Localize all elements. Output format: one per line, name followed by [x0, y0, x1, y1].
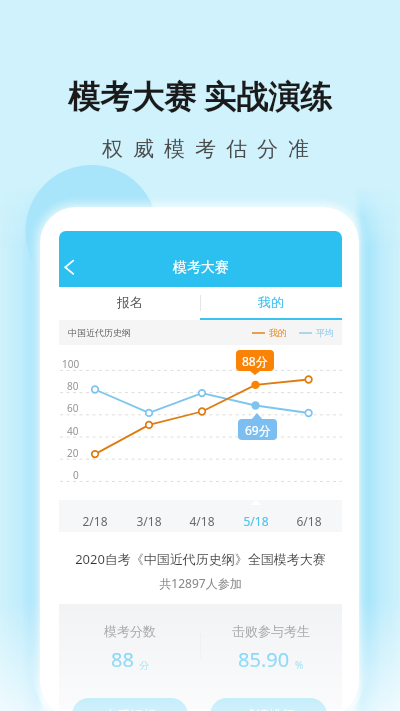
- button[interactable]: 成绩排行: [210, 698, 327, 711]
- staticText: 中国近代历史纲: [68, 327, 131, 338]
- staticText: 60: [67, 401, 79, 415]
- staticText: 3/18: [129, 513, 169, 529]
- staticText: 报名: [117, 294, 143, 310]
- staticText: 2/18: [75, 513, 115, 529]
- staticText: 共12897人参加: [59, 575, 342, 591]
- staticText: 模考大赛: [173, 259, 229, 277]
- staticText: 6/18: [289, 513, 329, 529]
- staticText: 20: [67, 446, 79, 460]
- staticText: 模考分数: [104, 623, 156, 639]
- button[interactable]: 查看解析: [72, 698, 188, 711]
- button[interactable]: 我的: [200, 287, 342, 320]
- staticText: 我的: [258, 294, 284, 310]
- staticText: 2020自考《中国近代历史纲》全国模考大赛: [59, 550, 342, 568]
- staticText: %: [295, 658, 304, 672]
- staticText: 5/18: [236, 513, 276, 529]
- button[interactable]: 报名: [59, 287, 200, 320]
- staticText: 成绩排行: [243, 707, 295, 711]
- staticText: 40: [67, 424, 79, 438]
- staticText: 权威模考估分准: [97, 136, 314, 162]
- staticText: 4/18: [182, 513, 222, 529]
- staticText: 分: [139, 659, 149, 672]
- staticText: 查看解析: [104, 707, 156, 711]
- staticText: 85.90: [238, 646, 290, 673]
- staticText: 88分: [242, 353, 268, 369]
- staticText: 我的: [269, 327, 287, 338]
- staticText: 模考大赛 实战演练: [68, 74, 333, 118]
- staticText: 100: [62, 357, 79, 371]
- button[interactable]: Back: [59, 253, 81, 281]
- staticText: 88: [111, 646, 134, 673]
- staticText: 80: [67, 379, 79, 393]
- staticText: 69分: [245, 422, 271, 438]
- staticText: 击败参与考生: [232, 623, 310, 639]
- staticText: 平均: [316, 327, 334, 338]
- button[interactable]: Back: [59, 231, 342, 287]
- staticText: 0: [73, 468, 79, 482]
